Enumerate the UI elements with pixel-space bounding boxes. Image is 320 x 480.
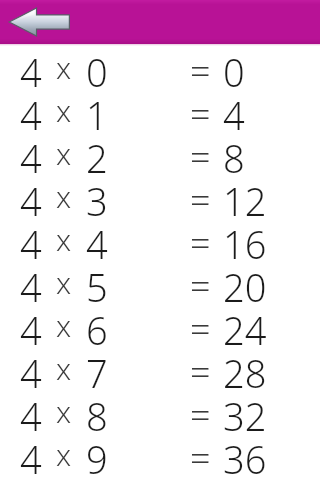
staticText: x bbox=[56, 90, 72, 131]
staticText: 6 bbox=[86, 304, 108, 347]
staticText: = bbox=[190, 89, 211, 132]
staticText: 4 bbox=[20, 390, 42, 433]
staticText: 20 bbox=[223, 261, 267, 304]
staticText: 12 bbox=[223, 175, 267, 218]
staticText: 28 bbox=[223, 347, 267, 390]
button[interactable]: 4 bbox=[0, 261, 320, 304]
staticText: = bbox=[190, 390, 211, 433]
button[interactable]: 4 bbox=[0, 89, 320, 132]
staticText: 4 bbox=[20, 218, 42, 261]
staticText: = bbox=[190, 175, 211, 218]
staticText: x bbox=[56, 176, 72, 217]
staticText: = bbox=[190, 261, 211, 304]
staticText: 32 bbox=[223, 390, 267, 433]
staticText: 8 bbox=[86, 390, 108, 433]
staticText: 4 bbox=[86, 218, 108, 261]
staticText: 5 bbox=[86, 261, 108, 304]
staticText: 4 bbox=[223, 89, 245, 132]
staticText: 0 bbox=[223, 46, 245, 89]
staticText: 1 bbox=[86, 89, 108, 132]
button[interactable]: Back bbox=[6, 4, 74, 40]
button[interactable]: 4 bbox=[0, 390, 320, 433]
staticText: 3 bbox=[86, 175, 108, 218]
staticText: x bbox=[56, 219, 72, 260]
staticText: x bbox=[56, 133, 72, 174]
staticText: = bbox=[190, 304, 211, 347]
staticText: 4 bbox=[20, 261, 42, 304]
staticText: 8 bbox=[223, 132, 245, 175]
staticText: = bbox=[190, 433, 211, 476]
button[interactable]: 4 bbox=[0, 433, 320, 476]
staticText: x bbox=[56, 391, 72, 432]
button[interactable]: 4 bbox=[0, 218, 320, 261]
staticText: 4 bbox=[20, 89, 42, 132]
staticText: 4 bbox=[20, 304, 42, 347]
button[interactable]: 4 bbox=[0, 347, 320, 390]
staticText: x bbox=[56, 348, 72, 389]
staticText: 16 bbox=[223, 218, 267, 261]
button[interactable]: 4 bbox=[0, 46, 320, 89]
staticText: 36 bbox=[223, 433, 267, 476]
staticText: x bbox=[56, 305, 72, 346]
staticText: = bbox=[190, 218, 211, 261]
button[interactable]: 4 bbox=[0, 175, 320, 218]
staticText: 24 bbox=[223, 304, 267, 347]
staticText: x bbox=[56, 434, 72, 475]
staticText: 4 bbox=[20, 46, 42, 89]
staticText: = bbox=[190, 132, 211, 175]
staticText: 2 bbox=[86, 132, 108, 175]
button[interactable]: 4 bbox=[0, 132, 320, 175]
staticText: = bbox=[190, 46, 211, 89]
button[interactable]: 4 bbox=[0, 304, 320, 347]
staticText: 9 bbox=[86, 433, 108, 476]
staticText: 4 bbox=[20, 347, 42, 390]
staticText: 7 bbox=[86, 347, 108, 390]
staticText: 0 bbox=[86, 46, 108, 89]
staticText: = bbox=[190, 347, 211, 390]
staticText: 4 bbox=[20, 433, 42, 476]
staticText: 4 bbox=[20, 175, 42, 218]
staticText: x bbox=[56, 47, 72, 88]
staticText: x bbox=[56, 262, 72, 303]
staticText: 4 bbox=[20, 132, 42, 175]
